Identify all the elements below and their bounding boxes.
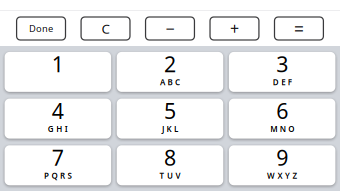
staticText: WXYZ: [267, 170, 297, 181]
staticText: MNO: [270, 124, 294, 134]
staticText: PQRS: [44, 170, 72, 181]
staticText: 9: [276, 143, 288, 172]
staticText: 4: [52, 97, 64, 125]
staticText: JKL: [162, 124, 178, 134]
staticText: ABC: [160, 77, 180, 87]
button[interactable]: 9: [229, 145, 335, 185]
button[interactable]: 8: [117, 145, 223, 185]
staticText: 6: [276, 97, 288, 125]
staticText: =: [294, 17, 304, 40]
staticText: 7: [52, 143, 64, 172]
staticText: 2: [164, 50, 176, 78]
staticText: GHI: [48, 124, 68, 134]
button[interactable]: 3: [229, 52, 335, 92]
staticText: 5: [164, 97, 176, 125]
button[interactable]: 6: [229, 99, 335, 139]
button[interactable]: 4: [5, 99, 111, 139]
staticText: DEF: [273, 77, 292, 87]
button[interactable]: Clear: [81, 17, 130, 40]
button[interactable]: Minus: [146, 17, 194, 40]
button[interactable]: Equals: [274, 17, 323, 40]
staticText: TUV: [159, 170, 180, 181]
staticText: +: [230, 18, 239, 39]
button[interactable]: 1: [5, 52, 111, 92]
staticText: 1: [52, 50, 64, 78]
button[interactable]: 2: [117, 52, 223, 92]
button[interactable]: Plus: [210, 17, 259, 40]
staticText: −: [165, 18, 174, 39]
staticText: C: [101, 20, 109, 37]
button[interactable]: Done: [17, 17, 65, 40]
button[interactable]: 5: [117, 99, 223, 139]
button[interactable]: 7: [5, 145, 111, 185]
staticText: Done: [29, 22, 53, 35]
staticText: 3: [276, 50, 288, 78]
staticText: 8: [164, 143, 176, 172]
